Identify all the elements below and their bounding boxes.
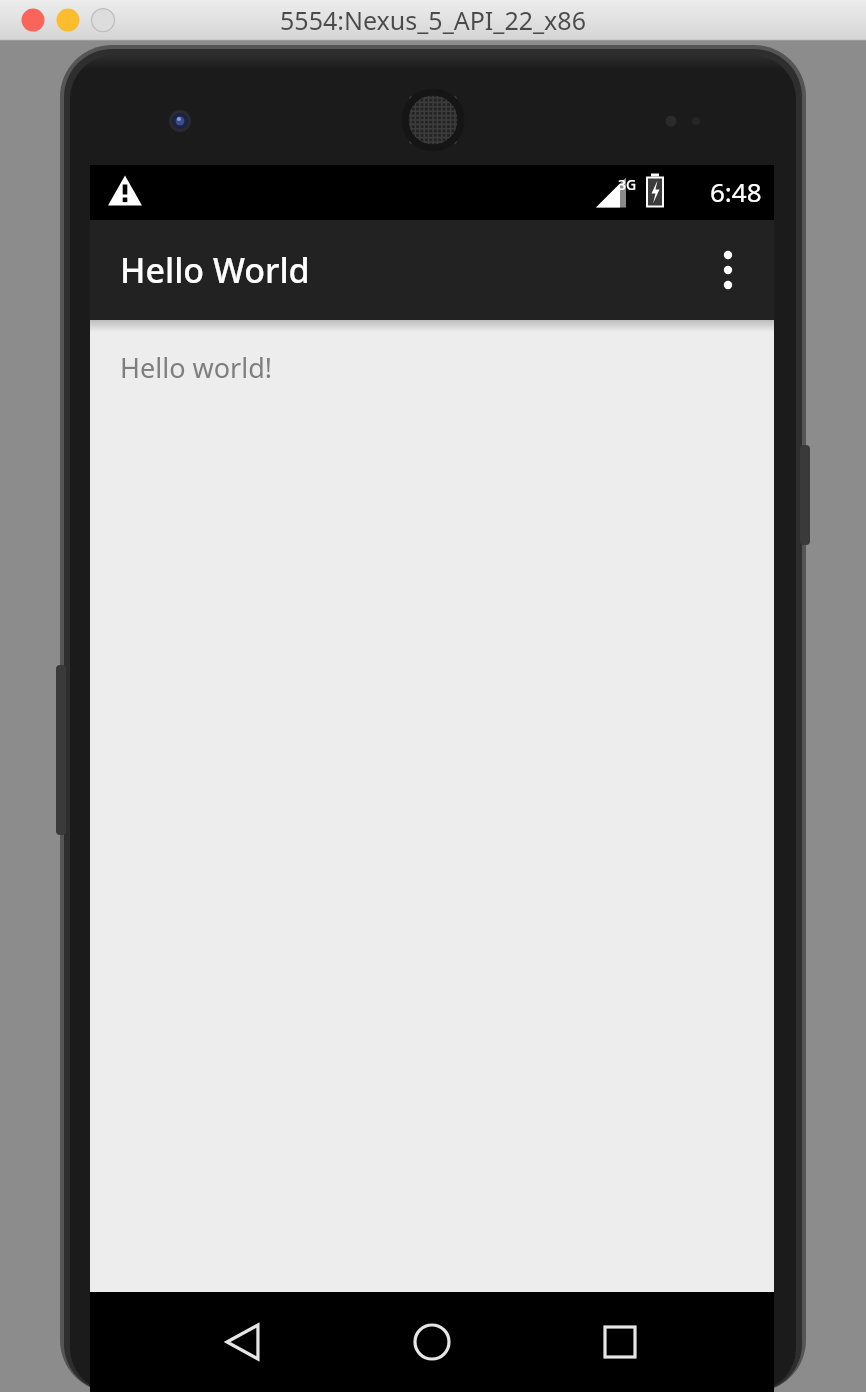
staticText: 6:48 <box>710 174 762 209</box>
button[interactable]: Recent apps <box>581 1303 659 1381</box>
button[interactable]: Home <box>393 1303 471 1381</box>
button[interactable]: Back <box>205 1303 283 1381</box>
staticText: Hello world! <box>120 349 273 386</box>
staticText: 5554:Nexus_5_API_22_x86 <box>280 3 586 37</box>
button[interactable]: More options <box>700 242 756 298</box>
staticText: 3G <box>618 175 637 194</box>
staticText: Hello World <box>120 247 310 293</box>
